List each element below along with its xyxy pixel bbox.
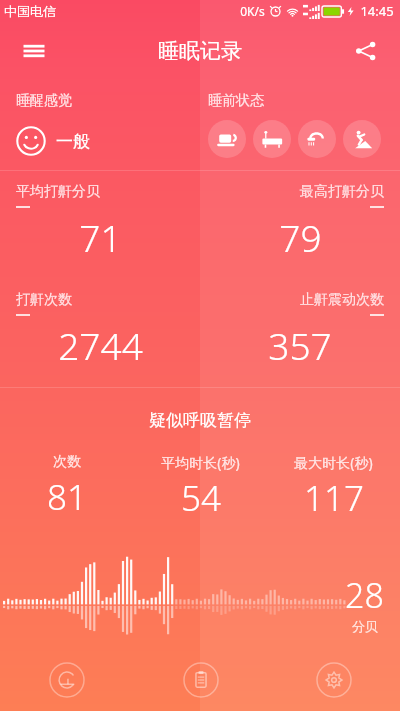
staticText: 28 [345, 572, 384, 618]
staticText: 71 [79, 212, 122, 262]
staticText: 中国电信 [4, 3, 56, 19]
button[interactable]: 平均打鼾分贝 [0, 171, 200, 279]
button[interactable]: 止鼾震动次数 [200, 279, 400, 387]
button[interactable]: Pre-sleep activity [253, 120, 291, 158]
staticText: 打鼾次数 [16, 291, 72, 309]
button[interactable]: 疑似呼吸暂停 [0, 388, 400, 530]
staticText: 睡前状态 [208, 92, 264, 110]
staticText: 最高打鼾分贝 [300, 183, 384, 201]
button[interactable]: Pre-sleep activity [343, 120, 381, 158]
staticText: 最大时长(秒) [294, 453, 373, 472]
staticText: 平均打鼾分贝 [16, 183, 100, 201]
button[interactable]: Report [134, 649, 267, 711]
staticText: 81 [47, 473, 87, 521]
staticText: 平均时长(秒) [161, 453, 240, 472]
staticText: 117 [304, 474, 364, 522]
staticText: 14:45 [360, 2, 394, 20]
button[interactable]: Settings [267, 649, 400, 711]
button[interactable]: Sleep [0, 649, 134, 711]
button[interactable]: Pre-sleep activity [208, 120, 246, 158]
staticText: 357 [268, 320, 332, 370]
staticText: 2744 [58, 320, 143, 370]
button[interactable]: 睡前状态 [200, 80, 400, 170]
button[interactable]: Menu [12, 29, 56, 73]
button[interactable]: 最高打鼾分贝 [200, 171, 400, 279]
staticText: 分贝 [352, 618, 378, 634]
button[interactable]: 睡醒感觉 [0, 80, 200, 170]
button[interactable]: Share [344, 29, 388, 73]
staticText: 睡醒感觉 [16, 92, 72, 110]
staticText: 睡眠记录 [158, 38, 242, 64]
staticText: 疑似呼吸暂停 [149, 410, 251, 431]
staticText: 次数 [53, 453, 81, 471]
staticText: 79 [279, 212, 322, 262]
button[interactable]: 打鼾次数 [0, 279, 200, 387]
button[interactable]: Pre-sleep activity [298, 120, 336, 158]
staticText: 0K/s [240, 3, 265, 19]
staticText: 一般 [56, 131, 90, 152]
staticText: 54 [181, 474, 221, 522]
staticText: 止鼾震动次数 [300, 291, 384, 309]
